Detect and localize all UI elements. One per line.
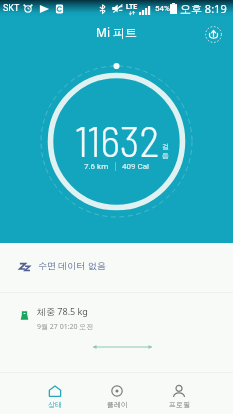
button[interactable]: 플레이 — [86, 373, 148, 414]
button[interactable]: 프로필 — [148, 373, 210, 414]
staticText: 7.6 km — [84, 162, 109, 171]
staticText: 상태 — [48, 400, 62, 409]
staticText: 플레이 — [107, 400, 128, 409]
button[interactable]: 체중 78.5 kg — [0, 293, 233, 356]
staticText: 프로필 — [169, 400, 190, 409]
staticText: SKT — [3, 3, 20, 14]
staticText: 오후 8:19 — [180, 1, 227, 16]
staticText: 체중 78.5 kg — [37, 305, 88, 317]
button[interactable]: Sync — [199, 20, 227, 48]
staticText: 걸 — [162, 142, 169, 151]
staticText: Mi 피트 — [96, 24, 138, 40]
staticText: 9월 27 01:20 오전 — [37, 322, 94, 332]
staticText: 409 Cal — [122, 162, 149, 171]
staticText: 54% — [155, 4, 170, 13]
staticText: 11632 — [75, 114, 160, 166]
button[interactable]: 수면 데이터 없음 — [0, 243, 233, 292]
staticText: LTE — [126, 3, 138, 11]
button[interactable]: 상태 — [23, 373, 86, 414]
staticText: 음 — [162, 151, 169, 160]
staticText: 수면 데이터 없음 — [38, 259, 106, 271]
